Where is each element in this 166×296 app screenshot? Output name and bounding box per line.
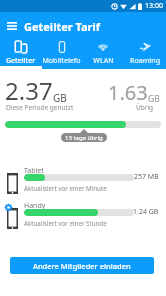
button[interactable]: Geteilter Tarif	[0, 38, 41, 69]
staticText: Geteilter Tarif	[0, 56, 41, 66]
staticText: Aktualisiert vor einer Minute	[24, 184, 107, 192]
staticText: Mobiltelefon	[41, 56, 82, 66]
staticText: Aktualisiert vor einer Stunde	[24, 219, 107, 227]
button[interactable]: WLAN	[82, 38, 124, 69]
staticText: GB	[148, 93, 160, 105]
staticText: Diese Periode genutzt	[6, 103, 74, 112]
staticText: WLAN	[93, 56, 114, 66]
staticText: 13 tage übrig	[65, 134, 103, 142]
staticText: Handy	[24, 201, 46, 211]
staticText: Geteilter Tarif	[24, 19, 101, 34]
staticText: Übrig	[136, 103, 154, 112]
button[interactable]: Mobiltelefon	[41, 38, 82, 69]
button[interactable]: Andere Mitglieder einladen	[10, 257, 154, 274]
button[interactable]: Tablet	[0, 166, 166, 196]
staticText: 257 MB	[134, 172, 159, 182]
staticText: Andere Mitglieder einladen	[33, 261, 131, 271]
staticText: GB	[53, 91, 67, 105]
button[interactable]: Open navigation menu	[0, 12, 24, 40]
staticText: 1.24 GB	[133, 207, 159, 217]
button[interactable]: Handy	[0, 201, 166, 231]
button[interactable]: Roaming	[124, 38, 166, 69]
staticText: 2.37	[5, 74, 53, 107]
staticText: Roaming	[130, 56, 160, 66]
staticText: 13:00	[145, 1, 163, 11]
staticText: 1.63	[108, 79, 148, 106]
staticText: Tablet	[24, 166, 44, 176]
